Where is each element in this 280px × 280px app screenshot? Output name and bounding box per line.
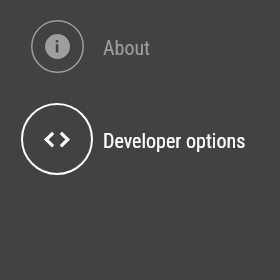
other: Developer options [21,103,93,175]
staticText: Developer options [103,129,246,152]
button[interactable]: Developer options [0,95,280,187]
button[interactable]: About [0,4,280,92]
staticText: About [103,36,151,59]
other: About [31,20,84,73]
